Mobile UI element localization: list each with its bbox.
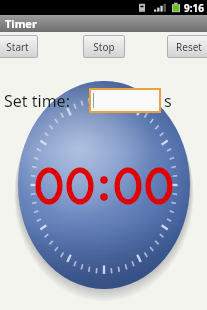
staticText: Reset: [176, 40, 202, 54]
staticText: Start: [6, 40, 29, 54]
button[interactable]: Reset: [167, 35, 207, 58]
button[interactable]: [89, 88, 161, 113]
staticText: Timer: [5, 16, 37, 31]
button[interactable]: Stop: [83, 35, 125, 58]
staticText: s: [164, 90, 172, 112]
staticText: Stop: [93, 40, 115, 54]
staticText: Set time:: [4, 90, 70, 112]
button[interactable]: Start: [0, 35, 38, 58]
staticText: 9:16: [184, 1, 204, 15]
